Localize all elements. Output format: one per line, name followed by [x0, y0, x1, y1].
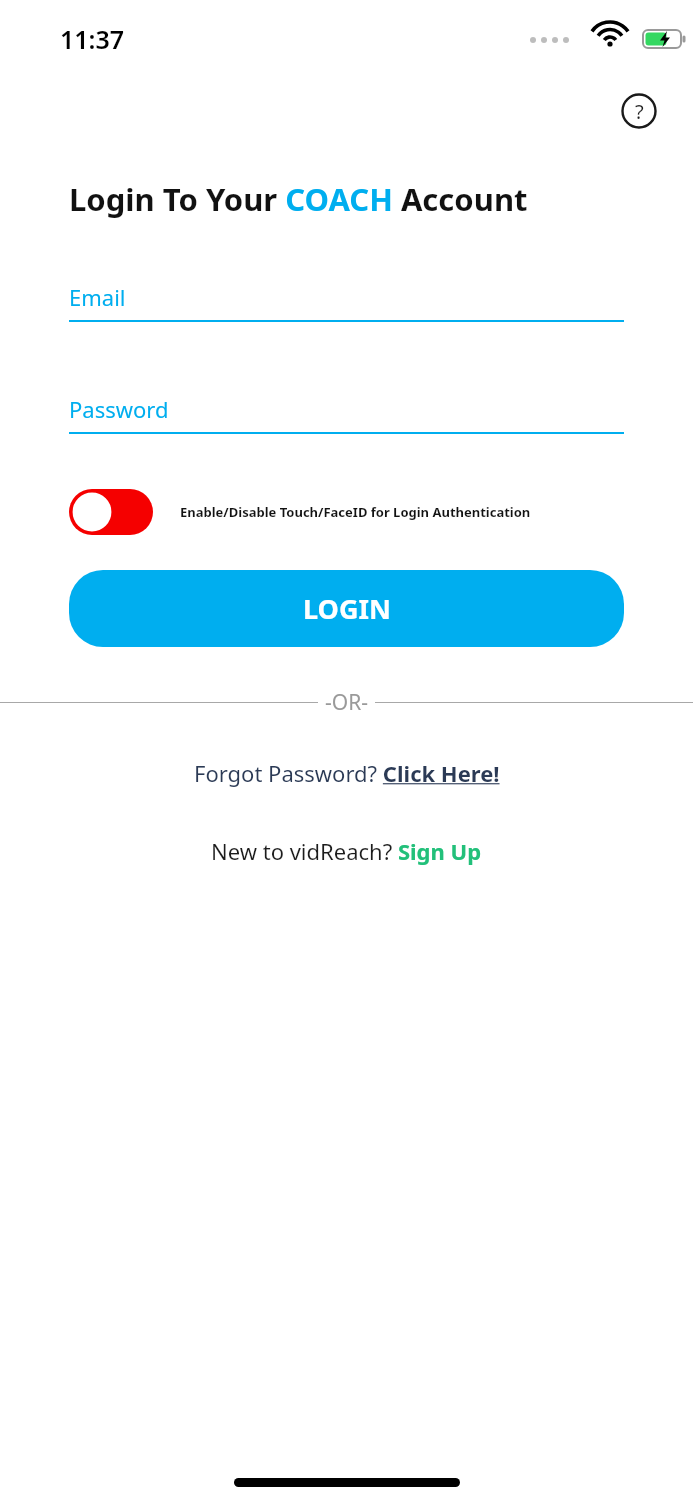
staticText: Password [69, 394, 169, 424]
button[interactable]: Enable or disable Touch or Face ID [69, 489, 153, 535]
staticText: -OR- [325, 688, 368, 717]
staticText: Forgot Password? Click Here! [194, 758, 500, 788]
button[interactable]: Password [69, 394, 624, 434]
button[interactable]: Forgot Password? Click Here! [188, 752, 506, 794]
button[interactable]: LOGIN [69, 570, 624, 647]
staticText: Email [69, 282, 126, 312]
staticText: ? [635, 98, 644, 125]
staticText: New to vidReach? Sign Up [211, 836, 482, 866]
button[interactable]: New to vidReach? Sign Up [205, 830, 488, 872]
button[interactable]: Help [617, 89, 661, 133]
staticText: Login To Your COACH Account [69, 178, 528, 220]
staticText: LOGIN [303, 590, 391, 627]
staticText: Enable/Disable Touch/FaceID for Login Au… [180, 503, 531, 521]
staticText: 11:37 [60, 22, 125, 56]
button[interactable]: Email [69, 282, 624, 322]
